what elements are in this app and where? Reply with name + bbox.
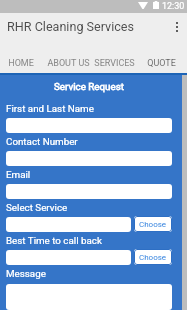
button[interactable] xyxy=(6,217,131,232)
staticText: Select Service xyxy=(6,202,68,213)
button[interactable]: More options xyxy=(166,13,187,40)
button[interactable] xyxy=(6,118,172,133)
button[interactable]: ABOUT US xyxy=(42,40,94,75)
staticText: ABOUT US xyxy=(47,58,90,69)
button[interactable]: QUOTE xyxy=(135,40,187,75)
staticText: Choose xyxy=(139,253,167,262)
staticText: First and Last Name xyxy=(6,103,94,114)
staticText: Service Request xyxy=(54,81,124,92)
staticText: HOME xyxy=(8,58,34,69)
button[interactable] xyxy=(6,284,172,310)
button[interactable]: Choose xyxy=(134,216,172,232)
button[interactable]: Choose xyxy=(134,249,172,265)
staticText: 12:30 xyxy=(162,1,185,12)
staticText: Best Time to call back xyxy=(6,235,102,246)
button[interactable] xyxy=(6,184,172,199)
staticText: QUOTE xyxy=(147,58,176,69)
button[interactable] xyxy=(6,250,131,265)
button[interactable] xyxy=(6,151,172,166)
staticText: Message xyxy=(6,268,46,279)
staticText: Choose xyxy=(139,220,167,229)
staticText: Email xyxy=(6,169,31,180)
button[interactable]: SERVICES xyxy=(94,40,135,75)
staticText: SERVICES xyxy=(94,58,135,69)
staticText: RHR Cleaning Services xyxy=(7,19,166,34)
staticText: Contact Number xyxy=(6,136,78,147)
button[interactable]: HOME xyxy=(0,40,42,75)
